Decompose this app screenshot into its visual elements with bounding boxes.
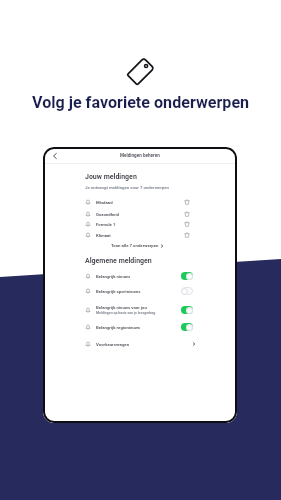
button[interactable]: Formule 1: [85, 219, 191, 229]
button[interactable]: Terug: [48, 149, 61, 162]
staticText: Belangrijk nieuws voor jou: [96, 305, 147, 310]
staticText: Toon alle 7 onderwerpen: [111, 243, 159, 248]
staticText: Belangrijk regionieuws: [96, 325, 141, 330]
staticText: Voorkeursvragen: [96, 342, 130, 347]
staticText: Meldingen beheren: [120, 153, 160, 158]
button[interactable]: Aan: [181, 272, 193, 280]
button[interactable]: Voorkeursvragen: [85, 338, 196, 350]
staticText: Jouw meldingen: [85, 173, 137, 181]
button[interactable]: Klimaat: [85, 230, 191, 240]
staticText: Klimaat: [96, 233, 111, 238]
button[interactable]: Gezondheid: [85, 209, 191, 219]
button[interactable]: Misdaad: [85, 197, 191, 207]
button[interactable]: Toon alle 7 onderwerpen: [111, 241, 164, 250]
button[interactable]: Belangrijk nieuws: [85, 270, 193, 282]
staticText: Misdaad: [96, 200, 113, 205]
staticText: Je ontvangt meldingen voor 7 onderwerpen: [85, 185, 169, 190]
staticText: Formule 1: [96, 222, 116, 227]
staticText: Belangrijk sportnieuws: [96, 289, 141, 294]
staticText: Gezondheid: [96, 212, 119, 217]
button[interactable]: Belangrijk regionieuws: [85, 321, 193, 333]
button[interactable]: Aan: [181, 323, 193, 331]
button[interactable]: Aan: [181, 306, 193, 314]
button[interactable]: Belangrijk sportnieuws: [85, 285, 193, 297]
button[interactable]: Uit: [181, 287, 193, 295]
staticText: Algemene meldingen: [85, 257, 152, 265]
button[interactable]: Belangrijk nieuws voor jou: [85, 304, 193, 316]
staticText: Belangrijk nieuws: [96, 274, 131, 279]
staticText: Volg je favoriete onderwerpen: [32, 93, 250, 112]
staticText: Meldingen op basis van je leesgedrag: [96, 311, 156, 315]
